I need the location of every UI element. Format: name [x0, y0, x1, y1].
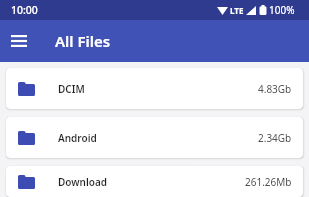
button[interactable]: DCIM: [6, 68, 303, 109]
staticText: 261.26Mb: [245, 175, 292, 189]
staticText: 4.83Gb: [258, 82, 292, 96]
staticText: All Files: [55, 31, 111, 51]
staticText: Android: [58, 131, 97, 145]
staticText: DCIM: [58, 82, 85, 96]
button[interactable]: [11, 20, 27, 62]
staticText: 10:00: [11, 3, 38, 17]
staticText: 100%: [269, 3, 295, 17]
button[interactable]: Android: [6, 117, 303, 158]
staticText: Download: [58, 175, 108, 189]
staticText: 2.34Gb: [258, 131, 292, 145]
staticText: LTE: [230, 5, 244, 16]
button[interactable]: Download: [6, 166, 303, 197]
